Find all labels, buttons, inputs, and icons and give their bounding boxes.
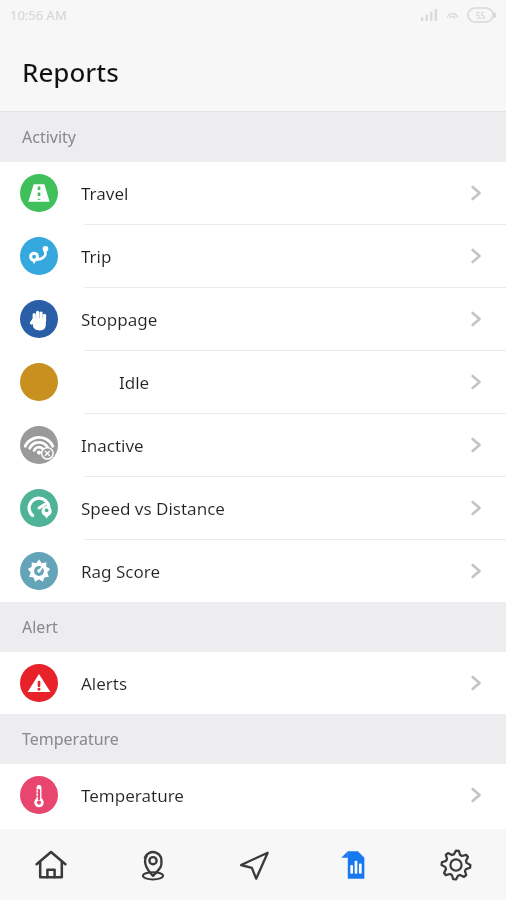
button[interactable]: Alerts bbox=[0, 652, 506, 714]
button[interactable]: Inactive bbox=[0, 414, 506, 476]
staticText: 10:56 AM bbox=[10, 6, 67, 24]
staticText: Alerts bbox=[81, 672, 466, 695]
button[interactable]: Speed vs Distance bbox=[0, 477, 506, 539]
staticText: Temperature bbox=[22, 728, 119, 750]
staticText: Temperature bbox=[81, 784, 466, 807]
staticText: Speed vs Distance bbox=[81, 497, 466, 520]
button[interactable]: Temperature bbox=[0, 764, 506, 826]
button[interactable]: Settings bbox=[405, 829, 506, 900]
button[interactable]: Travel bbox=[0, 162, 506, 224]
staticText: 55 bbox=[476, 10, 486, 21]
staticText: Rag Score bbox=[81, 560, 466, 583]
button[interactable]: Navigate bbox=[203, 829, 304, 900]
staticText: Stoppage bbox=[81, 308, 466, 331]
staticText: Travel bbox=[81, 182, 466, 205]
staticText: Reports bbox=[22, 54, 119, 89]
staticText: Trip bbox=[81, 245, 466, 268]
button[interactable]: Places bbox=[102, 829, 203, 900]
staticText: Idle bbox=[119, 371, 466, 394]
button[interactable]: Home bbox=[0, 829, 102, 900]
button[interactable]: Stoppage bbox=[0, 288, 506, 350]
button[interactable]: Rag Score bbox=[0, 540, 506, 602]
staticText: Inactive bbox=[81, 434, 466, 457]
staticText: Activity bbox=[22, 126, 77, 148]
staticText: Alert bbox=[22, 616, 58, 638]
button[interactable]: Trip bbox=[0, 225, 506, 287]
button[interactable]: Z bbox=[0, 351, 506, 413]
button[interactable]: Reports bbox=[304, 829, 405, 900]
